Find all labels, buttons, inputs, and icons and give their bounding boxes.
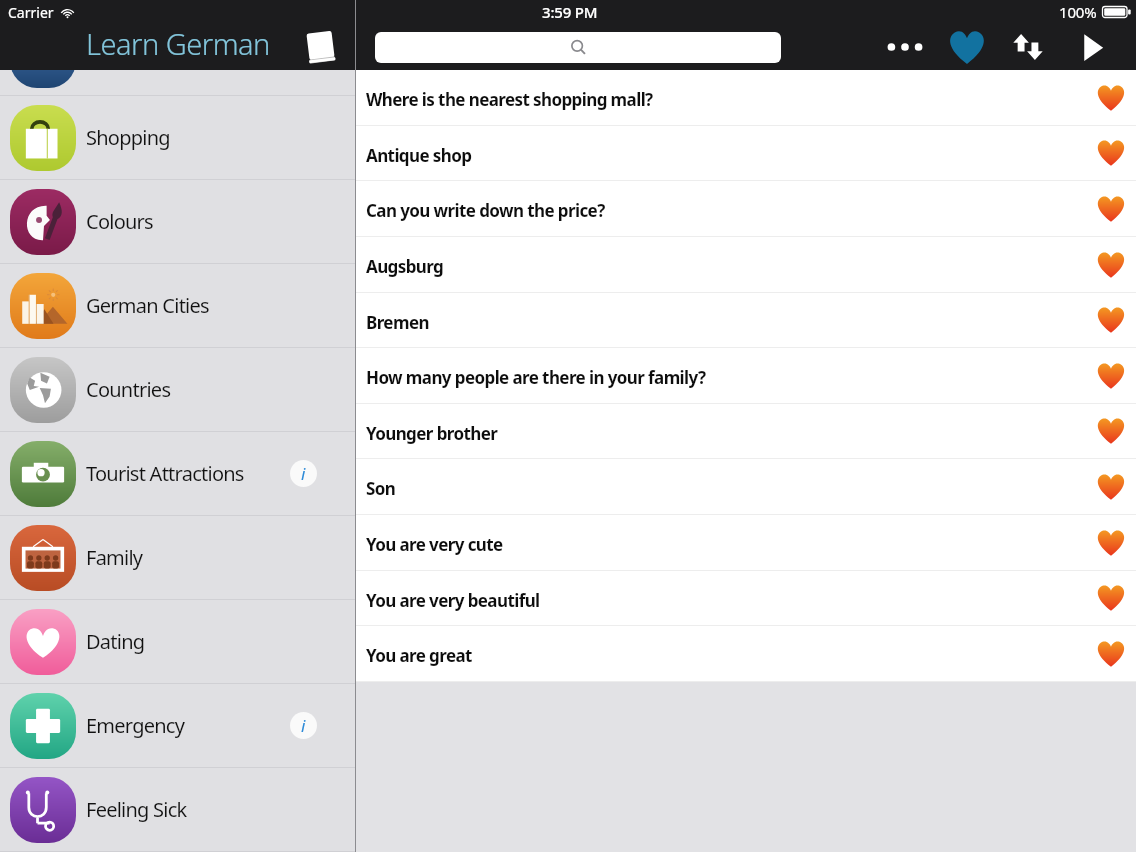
button[interactable]: Where is the nearest shopping mall?	[356, 70, 1136, 125]
button[interactable]: Favourite	[1095, 471, 1127, 503]
button[interactable]: Augsburg	[356, 237, 1136, 292]
staticText: 3:59 PM	[542, 2, 598, 22]
button[interactable]: Tourist Attractions	[0, 432, 355, 515]
button[interactable]: Son	[356, 459, 1136, 514]
button[interactable]: Favourite	[1095, 415, 1127, 447]
staticText: Tourist Attractions	[86, 460, 244, 487]
button[interactable]: Colours	[0, 180, 355, 263]
button[interactable]: Shopping	[0, 96, 355, 179]
staticText: 100%	[1059, 2, 1097, 22]
staticText: Where is the nearest shopping mall?	[366, 88, 653, 111]
button[interactable]: Favourite	[1095, 82, 1127, 114]
button[interactable]: Info	[290, 712, 317, 739]
staticText: Feeling Sick	[86, 796, 187, 823]
staticText: Augsburg	[366, 255, 444, 278]
button[interactable]: Favourite	[1095, 304, 1127, 336]
button[interactable]: Info	[290, 460, 317, 487]
staticText: Colours	[86, 208, 153, 235]
staticText: Countries	[86, 376, 171, 403]
button[interactable]: Countries	[0, 348, 355, 431]
staticText: You are very cute	[366, 533, 503, 556]
staticText: Son	[366, 477, 396, 500]
button[interactable]: Bremen	[356, 293, 1136, 347]
staticText: i	[301, 462, 306, 485]
button[interactable]: Favourite	[1095, 638, 1127, 670]
button[interactable]	[375, 32, 781, 63]
button[interactable]: More options	[885, 27, 925, 67]
button[interactable]: You are very cute	[356, 515, 1136, 570]
button[interactable]: How many people are there in your family…	[356, 348, 1136, 403]
staticText: Emergency	[86, 712, 185, 739]
staticText: How many people are there in your family…	[366, 366, 706, 389]
button[interactable]: Younger brother	[356, 404, 1136, 458]
staticText: You are very beautiful	[366, 589, 540, 612]
button[interactable]: Family	[0, 516, 355, 599]
button[interactable]: You are great	[356, 626, 1136, 681]
button[interactable]: German Cities	[0, 264, 355, 347]
staticText: i	[301, 714, 306, 737]
staticText: Bremen	[366, 311, 429, 334]
staticText: You are great	[366, 644, 472, 667]
staticText: Younger brother	[366, 422, 498, 445]
button[interactable]: Favourite	[1095, 582, 1127, 614]
button[interactable]: Antique shop	[356, 126, 1136, 180]
button[interactable]: Can you write down the price?	[356, 181, 1136, 236]
button[interactable]: Sort	[1013, 32, 1043, 62]
button[interactable]: Emergency	[0, 684, 355, 767]
button[interactable]: Play	[1075, 31, 1107, 63]
button[interactable]: Favourites	[949, 29, 985, 65]
staticText: Learn German	[86, 24, 270, 63]
button[interactable]: Dictionary	[302, 30, 339, 67]
button[interactable]: Favourite	[1095, 249, 1127, 281]
staticText: German Cities	[86, 292, 209, 319]
button[interactable]: Favourite	[1095, 527, 1127, 559]
button[interactable]: Feeling Sick	[0, 768, 355, 851]
staticText: Can you write down the price?	[366, 199, 605, 222]
button[interactable]: You are very beautiful	[356, 571, 1136, 625]
button[interactable]: Favourite	[1095, 137, 1127, 169]
staticText: Shopping	[86, 124, 170, 151]
staticText: Antique shop	[366, 144, 472, 167]
staticText: Carrier	[8, 3, 54, 22]
staticText: Family	[86, 544, 143, 571]
button[interactable]: Dating	[0, 600, 355, 683]
staticText: Dating	[86, 628, 145, 655]
button[interactable]: Favourite	[1095, 193, 1127, 225]
button[interactable]: Favourite	[1095, 360, 1127, 392]
